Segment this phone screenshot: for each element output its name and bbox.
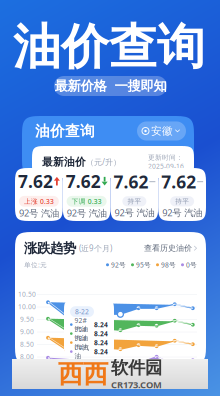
staticText: 油价查询	[13, 17, 205, 76]
staticText: 7.62	[66, 170, 101, 193]
staticText: 0#汽油	[75, 343, 90, 360]
staticText: 10.50	[18, 290, 36, 299]
staticText: 单位:元	[24, 260, 47, 269]
staticText: 8.24	[94, 320, 108, 329]
staticText: 92号 汽油	[67, 207, 107, 219]
staticText: 92号 汽油	[162, 206, 202, 219]
staticText: 0号	[186, 260, 197, 269]
staticText: CR173.COM	[111, 378, 162, 391]
staticText: 8.50	[20, 340, 34, 349]
staticText: 9.00	[20, 327, 34, 336]
button[interactable]: 安徽	[137, 121, 186, 140]
staticText: (近9个月)	[79, 243, 112, 253]
staticText: 下调 0.33	[72, 197, 102, 206]
staticText: 最新价格 一搜即知	[54, 78, 166, 94]
staticText: 8.24	[94, 347, 108, 356]
staticText: 油价查询	[35, 122, 95, 140]
staticText: 西西	[58, 358, 108, 389]
staticText: 涨跌趋势	[24, 240, 76, 256]
staticText: 7.62	[161, 170, 196, 193]
staticText: 95#汽油	[75, 325, 89, 342]
staticText: 92#汽油	[75, 316, 89, 333]
staticText: 92号	[111, 260, 126, 269]
staticText: 持平	[175, 197, 189, 205]
staticText: 8-22	[75, 307, 89, 316]
staticText: 8.00	[20, 352, 34, 361]
staticText: 上涨 0.33	[24, 197, 54, 206]
staticText: 8.24	[94, 329, 108, 338]
staticText: 安徽	[151, 124, 173, 137]
staticText: 7.62	[18, 170, 53, 193]
staticText: 95号	[136, 260, 151, 269]
staticText: 98号	[161, 260, 176, 269]
staticText: （元/升）	[86, 157, 121, 167]
button[interactable]: 查看历史油价	[144, 243, 197, 253]
staticText: 8.24	[94, 338, 108, 347]
staticText: 持平	[127, 197, 141, 205]
staticText: 9.50	[20, 315, 34, 324]
staticText: 98#汽油	[75, 334, 89, 351]
staticText: 查看历史油价	[144, 243, 192, 253]
staticText: 92号 汽油	[114, 206, 154, 219]
staticText: 7.62	[113, 170, 148, 193]
staticText: 更新时间：2025-09-16	[148, 153, 184, 170]
staticText: 10.00	[18, 302, 36, 311]
staticText: 软件园	[111, 357, 162, 378]
staticText: 最新油价	[42, 155, 86, 168]
staticText: 92号 汽油	[19, 207, 59, 219]
